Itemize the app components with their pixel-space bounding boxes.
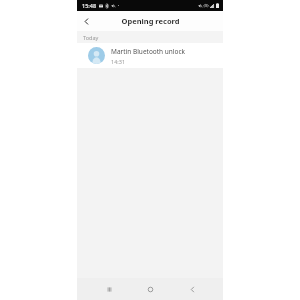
- staticText: Opening record: [121, 16, 180, 26]
- button[interactable]: Recents: [99, 279, 119, 299]
- staticText: 14:31: [111, 58, 126, 65]
- staticText: 15:48: [82, 2, 97, 9]
- staticText: Today: [83, 34, 99, 41]
- staticText: Martin Bluetooth unlock: [111, 47, 186, 56]
- button[interactable]: Martin Bluetooth unlock: [77, 43, 223, 68]
- button[interactable]: Home: [140, 279, 160, 299]
- button[interactable]: Back: [77, 12, 95, 30]
- button[interactable]: Back: [182, 279, 202, 299]
